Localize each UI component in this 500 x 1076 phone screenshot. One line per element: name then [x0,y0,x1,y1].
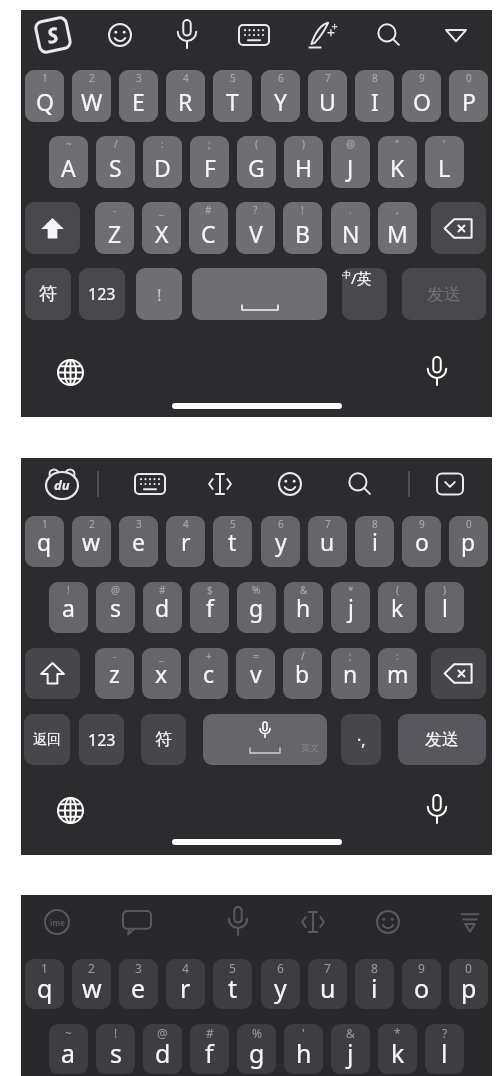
button[interactable]: 7 [308,70,347,122]
button[interactable]: 发送 [402,268,486,320]
button[interactable]: ; [331,648,370,699]
button[interactable]: ~ [49,1024,88,1074]
button[interactable]: ( [237,136,276,188]
button[interactable]: - [95,202,134,254]
button[interactable]: % [237,1024,276,1074]
button[interactable] [39,216,66,241]
button[interactable]: * [331,582,370,633]
button[interactable] [300,909,326,935]
button[interactable]: & [331,1024,370,1074]
button[interactable]: ? [425,1024,464,1074]
button[interactable] [431,202,486,254]
button[interactable]: % [237,582,276,633]
button[interactable]: 3 [119,70,158,122]
button[interactable]: 123 [79,268,125,320]
button[interactable]: 5 [213,70,252,122]
button[interactable]: ? [236,202,275,254]
button[interactable] [25,648,80,699]
button[interactable] [444,26,468,44]
button[interactable]: 2 [72,959,111,1009]
button[interactable]: 1 [25,516,64,567]
button[interactable]: . [331,202,370,254]
button[interactable]: ; [190,136,229,188]
button[interactable]: ! [49,582,88,633]
button[interactable]: 9 [402,516,441,567]
button[interactable] [277,471,303,497]
button[interactable] [437,472,463,496]
button[interactable]: ' [284,1024,323,1074]
button[interactable]: 符 [25,268,71,320]
button[interactable]: - [95,648,134,699]
button[interactable] [239,23,269,47]
button[interactable]: 发送 [398,714,486,765]
button[interactable] [39,661,66,686]
button[interactable]: # [189,202,228,254]
button[interactable]: , [378,202,417,254]
button[interactable]: 2 [72,70,111,122]
button[interactable]: 中 [342,268,387,320]
button[interactable]: _ [142,202,181,254]
button[interactable]: 返回 [24,714,70,765]
button[interactable]: 4 [166,516,205,567]
button[interactable]: : [143,136,182,188]
button[interactable] [444,218,474,239]
button[interactable] [426,357,448,387]
button[interactable]: / [283,648,322,699]
button[interactable]: + [189,648,228,699]
button[interactable]: 9 [402,70,441,122]
button[interactable]: 5 [213,516,252,567]
button[interactable]: 8 [355,70,394,122]
button[interactable]: / [96,136,135,188]
button[interactable] [347,471,373,497]
button[interactable]: 7 [308,959,347,1009]
button[interactable] [57,797,84,824]
button[interactable]: 7 [308,516,347,567]
button[interactable]: 5 [213,959,252,1009]
button[interactable] [192,268,327,320]
button[interactable]: ) [425,582,464,633]
button[interactable]: 8 [355,959,394,1009]
button[interactable] [250,748,280,753]
button[interactable]: ! [136,268,182,320]
button[interactable]: @ [331,136,370,188]
button[interactable]: ime [43,908,71,936]
button[interactable]: 2 [72,516,111,567]
button[interactable]: 0 [449,959,488,1009]
button[interactable]: 123 [79,714,124,765]
button[interactable]: 3 [119,516,158,567]
button[interactable] [308,21,336,49]
button[interactable]: 4 [166,70,205,122]
button[interactable]: 0 [449,70,488,122]
button[interactable]: ( [378,582,417,633]
button[interactable]: @ [143,1024,182,1074]
button[interactable]: ·, [341,714,381,765]
button[interactable] [107,22,133,48]
button[interactable]: 4 [166,959,205,1009]
button[interactable] [123,909,151,935]
button[interactable] [135,472,165,496]
button[interactable]: S [33,15,73,55]
button[interactable]: 8 [355,516,394,567]
button[interactable]: & [284,582,323,633]
button[interactable]: 英文 [203,714,327,765]
button[interactable]: 0 [449,516,488,567]
button[interactable]: _ [142,648,181,699]
button[interactable] [444,663,474,684]
button[interactable]: = [236,648,275,699]
button[interactable]: ! [96,1024,135,1074]
button[interactable]: " [378,136,417,188]
button[interactable]: 1 [25,70,64,122]
button[interactable]: 符 [141,714,186,765]
button[interactable]: : [378,648,417,699]
button[interactable]: ) [284,136,323,188]
button[interactable]: 6 [261,959,300,1009]
button[interactable]: $ [190,582,229,633]
button[interactable]: ~ [49,136,88,188]
button[interactable] [458,910,482,934]
button[interactable] [426,795,448,825]
button[interactable]: ! [283,202,322,254]
button[interactable] [431,648,486,699]
button[interactable] [176,20,198,50]
button[interactable]: 6 [261,70,300,122]
button[interactable]: * [378,1024,417,1074]
